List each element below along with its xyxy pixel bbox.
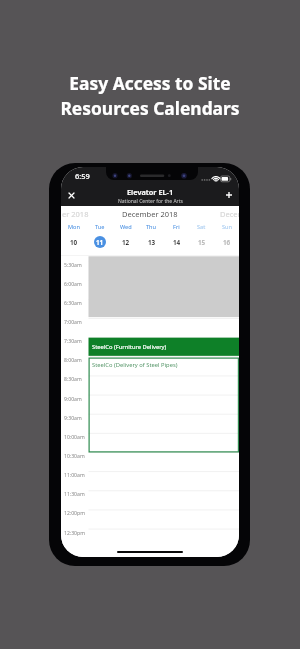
button[interactable]: Mon — [61, 222, 87, 248]
button[interactable]: Close — [62, 186, 80, 204]
staticText: 12 — [122, 238, 130, 247]
button[interactable]: Sat — [189, 222, 214, 248]
staticText: 9:00am — [64, 396, 82, 403]
staticText: 16 — [223, 238, 231, 247]
staticText: Tue — [95, 223, 105, 231]
staticText: 14 — [173, 238, 181, 247]
staticText: Decem — [220, 209, 239, 219]
button[interactable]: Wed — [113, 222, 139, 248]
staticText: 6:00am — [64, 281, 82, 288]
staticText: 15 — [198, 238, 206, 247]
staticText: Easy Access to Site Resources Calendars — [0, 71, 300, 120]
staticText: 11 — [96, 238, 104, 247]
staticText: Mon — [68, 223, 80, 231]
button[interactable]: Fri — [164, 222, 189, 248]
button[interactable]: Thu — [139, 222, 164, 248]
staticText: SteelCo (Furniture Delivery) — [92, 343, 167, 351]
staticText: Sun — [222, 223, 232, 231]
staticText: 9:30am — [64, 415, 82, 422]
staticText: 10 — [70, 238, 78, 247]
staticText: 5:30am — [64, 262, 82, 269]
staticText: 11:30am — [64, 491, 85, 498]
staticText: National Center for the Arts — [118, 198, 183, 205]
staticText: December 2018 — [122, 209, 178, 219]
staticText: Thu — [146, 223, 157, 231]
staticText: Elevator EL-1 — [127, 187, 174, 197]
staticText: 10:30am — [64, 453, 85, 460]
button[interactable]: Tue — [87, 222, 113, 248]
staticText: 8:00am — [64, 357, 82, 364]
staticText: 7:00am — [64, 319, 82, 326]
staticText: Sat — [197, 223, 206, 231]
staticText: Wed — [120, 223, 132, 231]
staticText: SteelCo (Delivery of Steel Pipes) — [92, 361, 178, 369]
staticText: 6:59 — [75, 171, 90, 181]
button[interactable]: Add event — [220, 186, 238, 204]
staticText: 11:00am — [64, 472, 85, 479]
button[interactable]: Sun — [214, 222, 239, 248]
staticText: 8:30am — [64, 376, 82, 383]
staticText: 6:30am — [64, 300, 82, 307]
staticText: 7:30am — [64, 338, 82, 345]
staticText: 13 — [148, 238, 156, 247]
staticText: 12:30pm — [64, 530, 85, 537]
staticText: Fri — [173, 223, 180, 231]
staticText: er 2018 — [62, 209, 89, 219]
staticText: 10:00am — [64, 434, 85, 441]
staticText: 12:00pm — [64, 510, 85, 517]
